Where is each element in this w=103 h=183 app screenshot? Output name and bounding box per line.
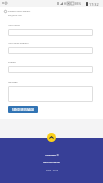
staticText: Message	[8, 81, 18, 84]
button[interactable]	[8, 66, 93, 73]
staticText: ask@bt76.com	[8, 14, 22, 17]
staticText: 2008 - 2018	[46, 169, 58, 172]
button[interactable]: SEND MESSAGE	[8, 106, 38, 113]
staticText: Support email address	[8, 10, 31, 13]
staticText: BitFX Exchange	[43, 161, 60, 164]
button[interactable]	[8, 29, 93, 36]
staticText: SEND MESSAGE	[12, 108, 35, 112]
staticText: Your name	[8, 24, 20, 27]
staticText: Your email address	[8, 42, 29, 45]
staticText: Copyright ©	[45, 153, 59, 156]
staticText: Subject	[8, 61, 16, 64]
button[interactable]: Scroll to top	[47, 133, 56, 142]
button[interactable]	[8, 86, 93, 102]
button[interactable]	[8, 47, 93, 54]
staticText: 17:32	[89, 2, 99, 7]
staticText: 86%	[75, 2, 81, 6]
